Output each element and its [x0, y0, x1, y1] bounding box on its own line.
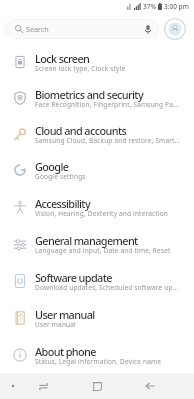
button[interactable]: About phone	[0, 336, 194, 373]
button[interactable]: Cloud and accounts	[0, 116, 194, 152]
button[interactable]: General management	[0, 225, 194, 262]
staticText: Software update	[35, 270, 112, 285]
staticText: Status, Legal information, Device name	[35, 357, 162, 366]
button[interactable]: Recent apps	[30, 373, 56, 399]
button[interactable]: Lock screen	[0, 44, 194, 80]
staticText: Biometrics and security	[35, 87, 144, 102]
staticText: About phone	[35, 344, 96, 359]
staticText: Lock screen	[35, 51, 90, 66]
staticText: 37%	[143, 2, 156, 11]
staticText: General management	[35, 233, 138, 248]
button[interactable]: Google	[0, 152, 194, 188]
button[interactable]: Home	[84, 373, 110, 399]
button[interactable]: Software update	[0, 262, 194, 299]
button[interactable]: Menu	[0, 373, 26, 399]
staticText: Screen lock type, Clock style	[35, 64, 126, 73]
button[interactable]: Search	[5, 19, 159, 39]
staticText: Cloud and accounts	[35, 123, 127, 138]
button[interactable]: Account	[163, 17, 187, 41]
staticText: Google	[35, 159, 69, 174]
staticText: User manual	[35, 320, 76, 329]
staticText: Search	[26, 24, 49, 34]
button[interactable]: Accessibility	[0, 188, 194, 225]
staticText: User manual	[35, 307, 95, 322]
staticText: Google settings	[35, 172, 86, 181]
staticText: 3:00 pm	[164, 2, 189, 11]
button[interactable]: Biometrics and security	[0, 80, 194, 116]
staticText: Accessibility	[35, 196, 91, 211]
button[interactable]: User manual	[0, 299, 194, 336]
staticText: Download updates, Scheduled software up.…	[35, 283, 179, 292]
staticText: Face Recognition, Fingerprint, Samsung P…	[35, 100, 179, 109]
button[interactable]: Back	[137, 373, 163, 399]
staticText: Language and input, Date and time, Reset	[35, 246, 171, 255]
button[interactable]: Voice search	[141, 23, 154, 36]
staticText: Samsung Cloud, Backup and restore, Smart…	[35, 136, 181, 145]
staticText: Vision, Hearing, Dexterity and interacti…	[35, 209, 169, 218]
